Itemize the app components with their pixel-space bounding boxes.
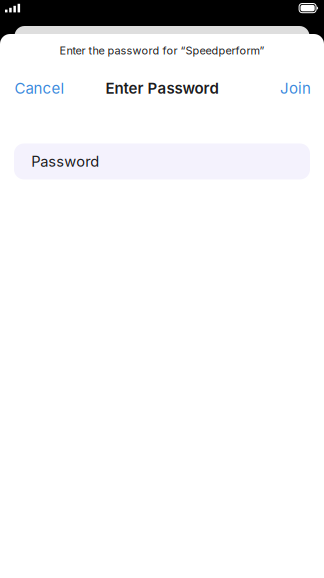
button[interactable]: Cancel (0, 72, 79, 104)
staticText: Enter the password for “Speedperform” (59, 44, 264, 57)
staticText: Enter Password (105, 79, 218, 97)
staticText: Password (31, 153, 99, 170)
staticText: Cancel (14, 79, 64, 97)
staticText: Join (280, 79, 311, 97)
button[interactable]: Password (14, 143, 310, 179)
button[interactable]: Join (263, 72, 324, 104)
